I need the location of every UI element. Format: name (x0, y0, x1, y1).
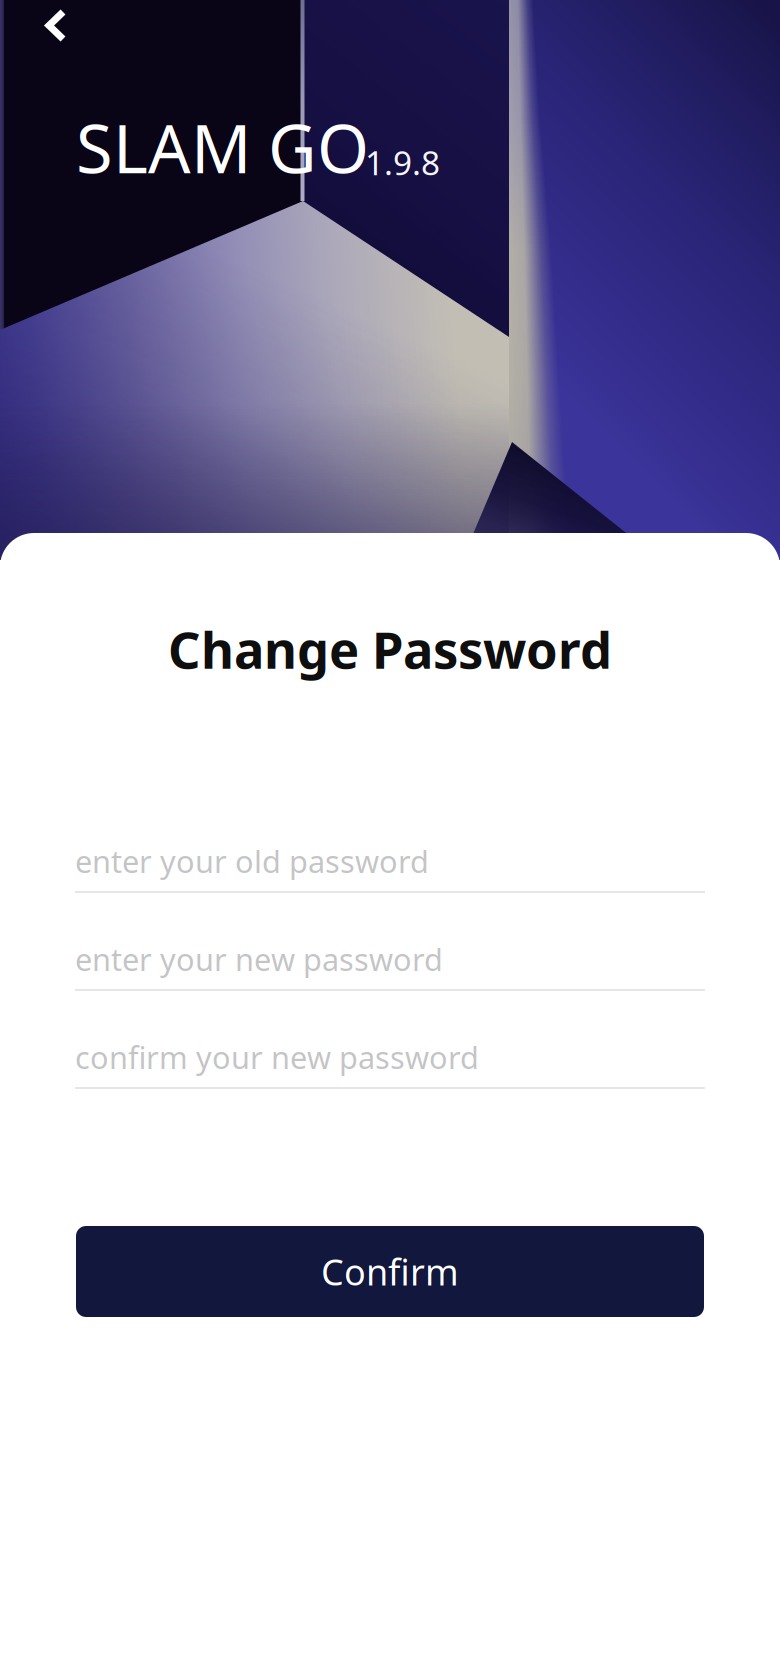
staticText: SLAM GO (76, 103, 369, 191)
staticText: Confirm (321, 1248, 459, 1295)
staticText: enter your new password (75, 939, 443, 979)
staticText: 1.9.8 (365, 140, 440, 185)
button[interactable]: Back (27, 0, 85, 59)
staticText: enter your old password (75, 841, 429, 881)
staticText: Change Password (168, 615, 612, 683)
staticText: confirm your new password (75, 1037, 479, 1077)
button[interactable]: Confirm (76, 1226, 704, 1317)
